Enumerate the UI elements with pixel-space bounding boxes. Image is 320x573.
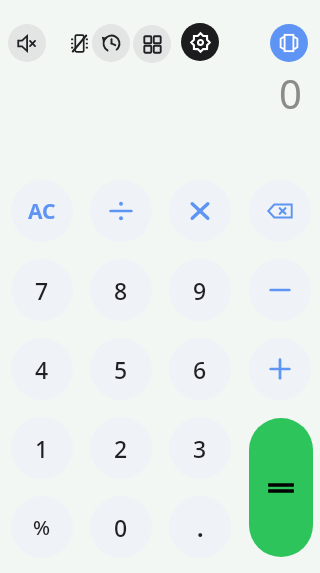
button[interactable]: 3 bbox=[169, 417, 231, 479]
button[interactable]: Settings bbox=[181, 23, 219, 61]
staticText: 0 bbox=[114, 512, 128, 543]
button[interactable]: Divide bbox=[90, 180, 152, 242]
staticText: 8 bbox=[114, 275, 128, 306]
button[interactable]: 1 bbox=[11, 417, 73, 479]
button[interactable]: 4 bbox=[11, 338, 73, 400]
staticText: 4 bbox=[35, 354, 49, 385]
staticText: 5 bbox=[114, 354, 128, 385]
staticText: 7 bbox=[35, 275, 49, 306]
button[interactable]: Keypad layout bbox=[133, 25, 171, 63]
button[interactable] bbox=[249, 418, 313, 557]
staticText: 9 bbox=[193, 275, 207, 306]
button[interactable]: Plus bbox=[249, 338, 311, 400]
button[interactable]: Switch layout bbox=[270, 24, 308, 62]
staticText: % bbox=[33, 514, 51, 541]
staticText: 2 bbox=[114, 433, 128, 464]
button[interactable]: 6 bbox=[169, 338, 231, 400]
staticText: 6 bbox=[193, 354, 207, 385]
staticText: AC bbox=[28, 197, 56, 226]
button[interactable]: 5 bbox=[90, 338, 152, 400]
button[interactable]: 8 bbox=[90, 259, 152, 321]
button[interactable]: Vibration off bbox=[60, 24, 98, 62]
button[interactable]: Multiply bbox=[169, 180, 231, 242]
button[interactable]: 0 bbox=[90, 496, 152, 558]
staticText: . bbox=[197, 512, 204, 543]
button[interactable]: Backspace bbox=[249, 180, 311, 242]
button[interactable]: History bbox=[92, 24, 130, 62]
staticText: 0 bbox=[279, 66, 302, 120]
staticText: 3 bbox=[193, 433, 207, 464]
staticText: 1 bbox=[35, 433, 49, 464]
button[interactable]: 9 bbox=[169, 259, 231, 321]
button[interactable]: 2 bbox=[90, 417, 152, 479]
button[interactable]: . bbox=[169, 496, 231, 558]
button[interactable]: AC bbox=[11, 180, 73, 242]
button[interactable]: 7 bbox=[11, 259, 73, 321]
button[interactable]: Minus bbox=[249, 259, 311, 321]
button[interactable]: % bbox=[11, 496, 73, 558]
button[interactable]: Mute sound bbox=[8, 24, 46, 62]
